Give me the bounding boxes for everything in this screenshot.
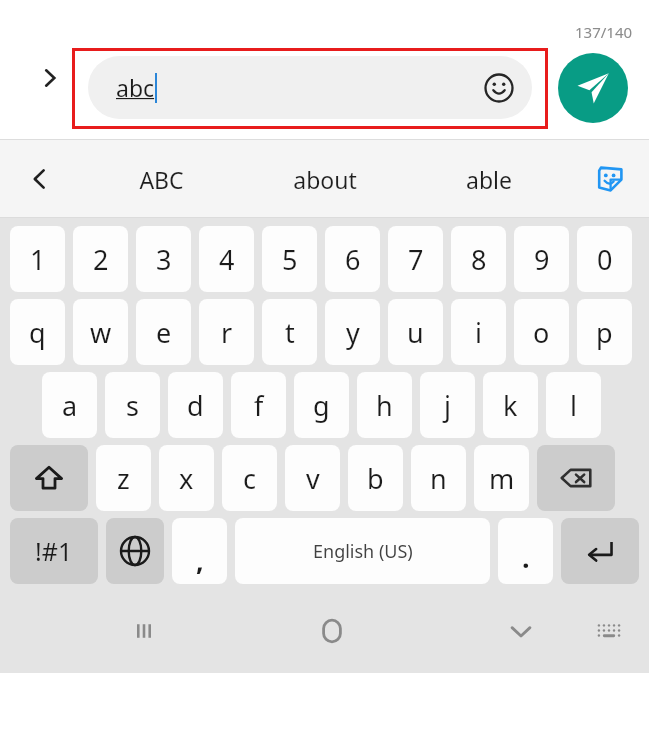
button[interactable]: 6 [325,226,380,292]
button[interactable]: s [105,372,160,438]
staticText: b [367,460,384,497]
button[interactable]: Hide keyboard [473,588,569,673]
button[interactable]: n [411,445,466,511]
button[interactable]: h [357,372,412,438]
staticText: 8 [471,241,487,278]
staticText: about [293,164,357,195]
button[interactable]: j [420,372,475,438]
staticText: a [62,387,78,424]
button[interactable]: ABC [80,140,243,218]
button[interactable]: f [231,372,286,438]
staticText: e [156,314,172,351]
staticText: u [407,314,424,351]
button[interactable]: a [42,372,97,438]
staticText: r [221,314,233,351]
button[interactable]: x [159,445,214,511]
button[interactable]: Stickers [571,140,649,218]
button[interactable]: Keyboard layout [569,588,649,673]
button[interactable]: i [451,299,506,365]
button[interactable]: o [514,299,569,365]
staticText: . [522,539,530,576]
button[interactable]: q [10,299,65,365]
button[interactable]: b [348,445,403,511]
button[interactable]: m [474,445,529,511]
staticText: w [90,314,112,351]
staticText: 0 [597,241,613,278]
staticText: able [466,164,512,195]
staticText: 6 [345,241,361,278]
staticText: o [533,314,550,351]
staticText: , [196,542,204,579]
staticText: 7 [408,241,424,278]
staticText: x [179,460,194,497]
button[interactable]: Emoji [480,69,518,107]
button[interactable]: 2 [73,226,128,292]
staticText: q [29,314,46,351]
button[interactable]: Backspace [537,445,615,511]
button[interactable]: 7 [388,226,443,292]
button[interactable]: able [407,140,571,218]
button[interactable]: . [498,518,553,584]
button[interactable]: v [285,445,340,511]
button[interactable]: d [168,372,223,438]
button[interactable]: r [199,299,254,365]
staticText: d [187,387,204,424]
staticText: f [254,387,264,424]
staticText: l [570,387,577,424]
button[interactable]: Recents [96,588,192,673]
button[interactable]: w [73,299,128,365]
button[interactable]: about [243,140,407,218]
staticText: t [285,314,295,351]
button[interactable]: g [294,372,349,438]
staticText: ABC [139,164,184,195]
button[interactable]: Shift [10,445,88,511]
staticText: n [430,460,447,497]
button[interactable]: Enter [561,518,639,584]
staticText: p [596,314,613,351]
staticText: 137/140 [575,22,633,42]
button[interactable]: 0 [577,226,632,292]
button[interactable]: u [388,299,443,365]
staticText: 2 [93,241,109,278]
staticText: English (US) [313,539,413,564]
button[interactable]: Expand [28,56,72,100]
button[interactable]: e [136,299,191,365]
staticText: g [313,387,330,424]
button[interactable]: k [483,372,538,438]
staticText: k [503,387,518,424]
button[interactable]: Change language [106,518,164,584]
button[interactable]: p [577,299,632,365]
staticText: i [475,314,482,351]
button[interactable]: l [546,372,601,438]
button[interactable]: z [96,445,151,511]
button[interactable]: 8 [451,226,506,292]
button[interactable]: !#1 [10,518,98,584]
button[interactable]: 1 [10,226,65,292]
staticText: abc [116,72,155,103]
staticText: s [126,387,139,424]
button[interactable]: y [325,299,380,365]
staticText: z [117,460,130,497]
button[interactable]: , [172,518,227,584]
button[interactable]: Send [558,53,628,123]
button[interactable]: 3 [136,226,191,292]
button[interactable]: 9 [514,226,569,292]
button[interactable]: 5 [262,226,317,292]
button[interactable]: t [262,299,317,365]
button[interactable]: 4 [199,226,254,292]
button[interactable]: Previous [0,140,80,218]
staticText: m [489,460,515,497]
button[interactable]: c [222,445,277,511]
button[interactable]: abc [88,56,532,119]
button[interactable]: Home [284,588,380,673]
staticText: 4 [219,241,235,278]
staticText: 1 [30,241,46,278]
staticText: y [346,314,360,351]
staticText: c [243,460,256,497]
staticText: v [306,460,320,497]
staticText: 9 [534,241,550,278]
staticText: 5 [282,241,298,278]
staticText: !#1 [35,534,73,568]
staticText: h [376,387,393,424]
button[interactable]: English (US) [235,518,490,584]
